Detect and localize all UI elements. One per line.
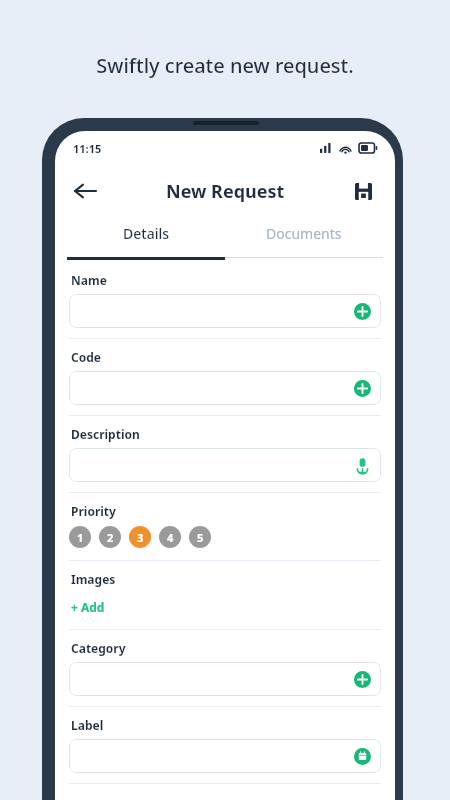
- button[interactable]: Add: [69, 371, 381, 405]
- staticText: + Add: [71, 599, 105, 615]
- button[interactable]: Add: [69, 662, 381, 696]
- staticText: Swiftly create new request.: [0, 52, 450, 79]
- button[interactable]: Save: [343, 171, 383, 211]
- staticText: Code: [71, 349, 101, 365]
- staticText: Documents: [266, 224, 342, 243]
- staticText: 2: [107, 530, 114, 545]
- staticText: Images: [71, 571, 116, 587]
- button[interactable]: 4: [159, 526, 181, 548]
- staticText: 11:15: [73, 141, 102, 156]
- staticText: Priority: [71, 503, 116, 519]
- staticText: New Request: [166, 179, 285, 204]
- staticText: Category: [71, 640, 126, 656]
- other: Pick date: [354, 748, 371, 765]
- button[interactable]: Pick date: [69, 739, 381, 773]
- other: Add: [354, 671, 371, 688]
- button[interactable]: Add: [69, 294, 381, 328]
- staticText: Label: [71, 717, 104, 733]
- button[interactable]: Back: [65, 171, 105, 211]
- button[interactable]: 1: [69, 526, 91, 548]
- button[interactable]: Details: [67, 217, 225, 249]
- staticText: Name: [71, 272, 107, 288]
- staticText: Description: [71, 426, 140, 442]
- button[interactable]: Documents: [225, 217, 383, 249]
- staticText: 3: [137, 530, 144, 545]
- button[interactable]: + Add: [69, 597, 111, 617]
- staticText: 4: [167, 530, 174, 545]
- button[interactable]: 3: [129, 526, 151, 548]
- button[interactable]: Voice input: [69, 448, 381, 482]
- other: Voice input: [354, 457, 371, 474]
- other: Add: [354, 380, 371, 397]
- staticText: 5: [197, 530, 204, 545]
- staticText: Details: [123, 224, 170, 243]
- button[interactable]: 2: [99, 526, 121, 548]
- other: Add: [354, 303, 371, 320]
- button[interactable]: 5: [189, 526, 211, 548]
- staticText: 1: [77, 530, 84, 545]
